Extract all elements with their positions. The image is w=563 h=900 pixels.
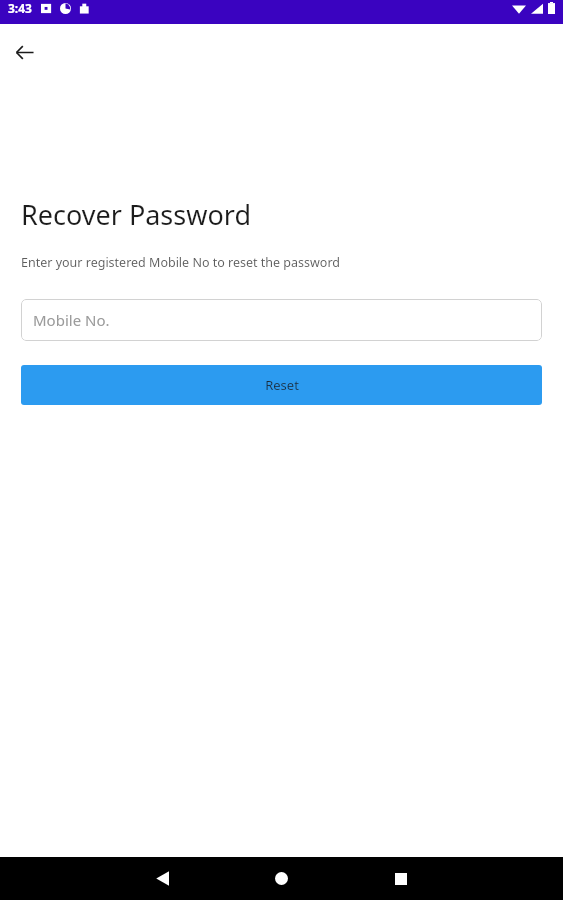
staticText: Reset [265,376,299,394]
staticText: Enter your registered Mobile No to reset… [21,254,340,271]
button[interactable]: Mobile No. [21,299,542,341]
button[interactable]: Back [6,34,42,70]
button[interactable]: Back [103,857,222,900]
staticText: 3:43 [8,0,32,16]
staticText: Mobile No. [33,310,110,330]
button[interactable]: Reset [21,365,542,405]
button[interactable]: Home [222,857,341,900]
staticText: Recover Password [21,196,252,233]
button[interactable]: Recent apps [341,857,460,900]
